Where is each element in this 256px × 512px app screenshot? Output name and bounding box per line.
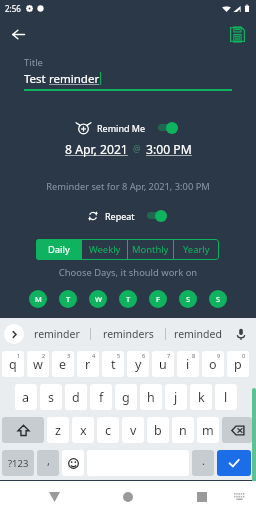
staticText: Test bbox=[24, 71, 49, 85]
button[interactable]: Toggle bbox=[158, 121, 179, 134]
staticText: q bbox=[9, 356, 17, 373]
staticText: 3 bbox=[67, 352, 71, 359]
button[interactable]: l bbox=[215, 384, 237, 410]
button[interactable]: Back bbox=[6, 22, 30, 46]
button[interactable]: Enter bbox=[217, 450, 251, 476]
button[interactable]: reminder bbox=[24, 318, 90, 350]
staticText: Choose Days, it should work on bbox=[0, 266, 256, 279]
staticText: g bbox=[122, 389, 130, 406]
staticText: @ bbox=[133, 143, 141, 155]
button[interactable]: Emoji bbox=[62, 450, 84, 476]
button[interactable]: M bbox=[29, 290, 47, 308]
button[interactable]: 8 Apr, 2021 bbox=[65, 141, 128, 157]
button[interactable]: o bbox=[202, 351, 224, 377]
staticText: i bbox=[186, 356, 190, 373]
staticText: T bbox=[66, 294, 71, 304]
button[interactable]: e bbox=[52, 351, 74, 377]
button[interactable]: 3:00 PM bbox=[146, 141, 192, 157]
staticText: 2:56 bbox=[5, 3, 21, 14]
staticText: 9 bbox=[217, 352, 221, 359]
staticText: 7 bbox=[167, 352, 171, 359]
staticText: Monthly bbox=[132, 243, 169, 256]
button[interactable]: reminders bbox=[91, 318, 165, 350]
button[interactable]: Weekly bbox=[82, 239, 127, 260]
button[interactable]: a bbox=[15, 384, 37, 410]
staticText: o bbox=[209, 356, 217, 373]
button[interactable]: S bbox=[209, 290, 227, 308]
button[interactable]: Voice input bbox=[229, 318, 252, 350]
staticText: x bbox=[80, 422, 87, 439]
button[interactable]: p bbox=[227, 351, 249, 377]
button[interactable]: w bbox=[27, 351, 49, 377]
button[interactable]: Home bbox=[111, 481, 144, 512]
staticText: Weekly bbox=[89, 243, 121, 256]
button[interactable]: Back bbox=[38, 481, 71, 512]
button[interactable]: t bbox=[102, 351, 124, 377]
button[interactable]: k bbox=[190, 384, 212, 410]
button[interactable]: f bbox=[90, 384, 112, 410]
staticText: 2 bbox=[42, 352, 46, 359]
button[interactable]: W bbox=[89, 290, 107, 308]
button[interactable]: . bbox=[192, 450, 214, 476]
button[interactable]: u bbox=[152, 351, 174, 377]
button[interactable]: ?123 bbox=[2, 450, 34, 476]
staticText: y bbox=[135, 356, 142, 373]
staticText: Remind Me bbox=[97, 122, 146, 134]
staticText: reminded bbox=[174, 327, 222, 341]
button[interactable]: Repeat bbox=[88, 210, 135, 222]
button[interactable]: Recents bbox=[185, 481, 218, 512]
staticText: W bbox=[95, 294, 102, 304]
staticText: h bbox=[147, 389, 155, 406]
button[interactable]: Backspace bbox=[222, 417, 252, 443]
staticText: e bbox=[59, 356, 67, 373]
button[interactable]: Shift bbox=[2, 417, 44, 443]
staticText: d bbox=[72, 389, 80, 406]
staticText: p bbox=[234, 356, 242, 373]
button[interactable]: b bbox=[147, 417, 169, 443]
staticText: S bbox=[186, 294, 191, 304]
button[interactable]: T bbox=[119, 290, 137, 308]
staticText: 8 bbox=[192, 352, 196, 359]
button[interactable]: m bbox=[197, 417, 219, 443]
button[interactable]: , bbox=[37, 450, 59, 476]
staticText: F bbox=[156, 294, 160, 304]
button[interactable]: g bbox=[115, 384, 137, 410]
button[interactable]: Toggle bbox=[147, 209, 168, 222]
button[interactable]: Save bbox=[226, 23, 248, 45]
staticText: m bbox=[202, 422, 214, 439]
button[interactable]: Monthly bbox=[128, 239, 173, 260]
staticText: 1 bbox=[17, 352, 21, 359]
button[interactable]: More suggestions bbox=[4, 324, 24, 344]
button[interactable]: d bbox=[65, 384, 87, 410]
button[interactable]: c bbox=[97, 417, 119, 443]
staticText: Daily bbox=[48, 243, 70, 256]
staticText: , bbox=[47, 453, 50, 468]
button[interactable]: reminded bbox=[166, 318, 229, 350]
button[interactable]: Switch keyboard bbox=[227, 481, 251, 512]
button[interactable]: y bbox=[127, 351, 149, 377]
button[interactable]: F bbox=[149, 290, 167, 308]
button[interactable]: x bbox=[72, 417, 94, 443]
button[interactable]: Yearly bbox=[174, 239, 219, 260]
button[interactable]: Daily bbox=[36, 239, 81, 260]
button[interactable]: i bbox=[177, 351, 199, 377]
button[interactable]: Remind Me bbox=[77, 122, 146, 134]
staticText: w bbox=[33, 356, 43, 373]
button[interactable]: r bbox=[77, 351, 99, 377]
button[interactable]: h bbox=[140, 384, 162, 410]
staticText: 6 bbox=[142, 352, 146, 359]
staticText: 4 bbox=[92, 352, 96, 359]
staticText: t bbox=[111, 356, 116, 373]
staticText: reminder bbox=[49, 71, 100, 85]
button[interactable]: v bbox=[122, 417, 144, 443]
button[interactable]: z bbox=[47, 417, 69, 443]
staticText: k bbox=[198, 389, 205, 406]
button[interactable]: S bbox=[179, 290, 197, 308]
staticText: j bbox=[174, 389, 178, 406]
button[interactable]: T bbox=[59, 290, 77, 308]
button[interactable]: j bbox=[165, 384, 187, 410]
button[interactable]: s bbox=[40, 384, 62, 410]
button[interactable]: q bbox=[2, 351, 24, 377]
button[interactable]: n bbox=[172, 417, 194, 443]
